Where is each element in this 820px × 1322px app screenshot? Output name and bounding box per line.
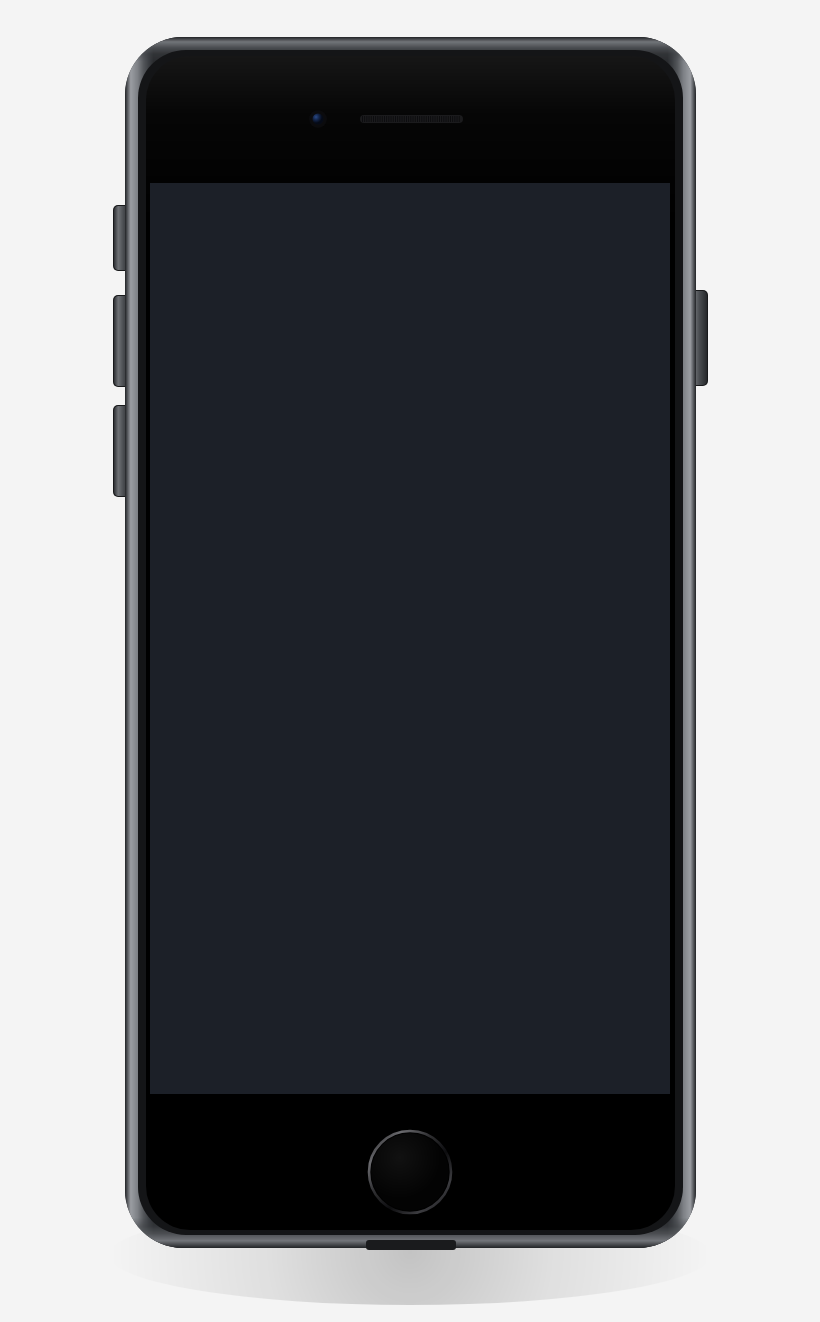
button[interactable]: Home (0, 0, 820, 1322)
